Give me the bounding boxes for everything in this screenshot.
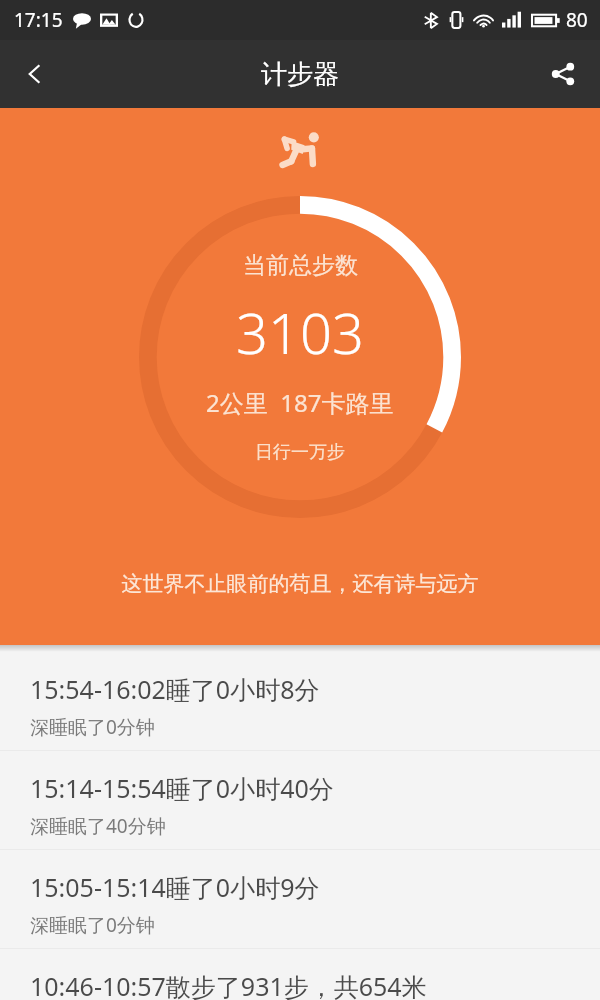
staticText: 深睡眠了0分钟 xyxy=(30,714,155,740)
button[interactable]: Back xyxy=(10,49,60,99)
staticText: 15:14-15:54睡了0小时40分 xyxy=(30,771,334,805)
staticText: 当前总步数 xyxy=(243,251,358,280)
staticText: 深睡眠了40分钟 xyxy=(30,813,166,839)
button[interactable]: 10:46-10:57散步了931步，共654米 xyxy=(0,949,600,1000)
staticText: 日行一万步 xyxy=(255,441,345,464)
button[interactable]: 15:05-15:14睡了0小时9分 xyxy=(0,850,600,948)
staticText: 计步器 xyxy=(261,58,339,91)
staticText: 10:46-10:57散步了931步，共654米 xyxy=(30,969,427,1000)
button[interactable]: 15:14-15:54睡了0小时40分 xyxy=(0,751,600,849)
button[interactable]: 15:54-16:02睡了0小时8分 xyxy=(0,652,600,750)
button[interactable]: Share xyxy=(538,49,588,99)
staticText: 15:05-15:14睡了0小时9分 xyxy=(30,870,320,904)
staticText: 15:54-16:02睡了0小时8分 xyxy=(30,672,320,706)
staticText: 这世界不止眼前的苟且，还有诗与远方 xyxy=(0,571,600,597)
staticText: 80 xyxy=(566,7,588,33)
staticText: 3103 xyxy=(236,294,364,370)
staticText: 深睡眠了0分钟 xyxy=(30,912,155,938)
staticText: 2公里 187卡路里 xyxy=(206,386,394,419)
staticText: 17:15 xyxy=(14,7,63,33)
